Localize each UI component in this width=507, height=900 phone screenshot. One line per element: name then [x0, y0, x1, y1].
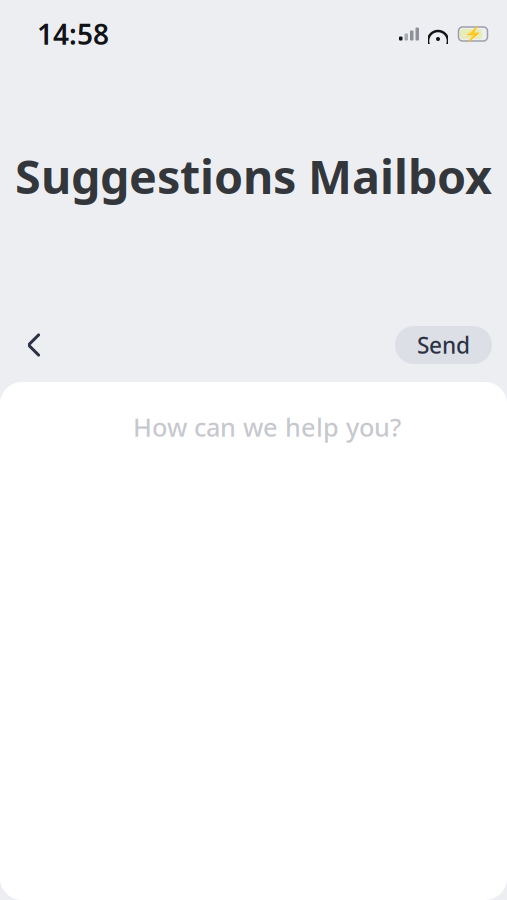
- staticText: Send: [417, 330, 470, 360]
- staticText: Suggestions Mailbox: [15, 145, 492, 207]
- staticText: 14:58: [37, 15, 109, 53]
- button[interactable]: Back: [11, 322, 57, 368]
- staticText: ⚡: [464, 26, 482, 42]
- button[interactable]: Send: [395, 326, 492, 364]
- staticText: How can we help you?: [133, 410, 401, 444]
